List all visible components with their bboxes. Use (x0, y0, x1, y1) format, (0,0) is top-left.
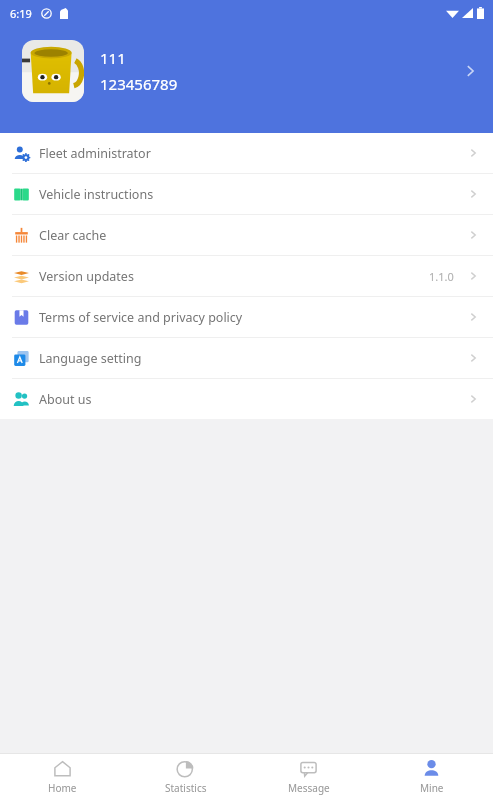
staticText: Vehicle instructions (39, 186, 154, 203)
button[interactable]: Statistics (124, 754, 247, 800)
staticText: 1.1.0 (429, 269, 454, 284)
staticText: About us (39, 391, 92, 408)
staticText: Fleet administrator (39, 145, 151, 162)
staticText: Terms of service and privacy policy (39, 309, 243, 326)
staticText: Statistics (165, 781, 207, 795)
staticText: Clear cache (39, 227, 107, 244)
button[interactable]: Vehicle instructions (0, 174, 493, 214)
button[interactable]: Fleet administrator (0, 133, 493, 173)
button[interactable]: Message (247, 754, 370, 800)
staticText: 123456789 (100, 74, 178, 94)
button[interactable]: Terms of service and privacy policy (0, 297, 493, 337)
staticText: Home (48, 781, 77, 795)
button[interactable]: Language setting (0, 338, 493, 378)
button[interactable]: About us (0, 379, 493, 419)
staticText: Message (288, 781, 330, 795)
staticText: 6:19 (10, 6, 32, 21)
staticText: 111 (100, 48, 126, 68)
staticText: Language setting (39, 350, 142, 367)
button[interactable]: Clear cache (0, 215, 493, 255)
button[interactable]: Home (0, 754, 124, 800)
button[interactable]: Mine (370, 754, 493, 800)
button[interactable]: Version updates (0, 256, 493, 296)
staticText: Mine (420, 781, 444, 795)
button[interactable]: 111 (0, 26, 493, 116)
staticText: Version updates (39, 268, 134, 285)
